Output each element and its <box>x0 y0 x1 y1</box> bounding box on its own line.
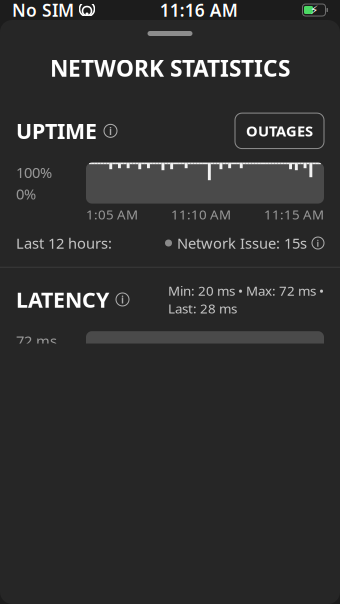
staticText: 11:15 AM <box>264 206 324 223</box>
staticText: OUTAGES <box>246 121 313 141</box>
staticText: NETWORK STATISTICS <box>50 53 290 83</box>
staticText: Network Issue: 15s <box>177 233 307 253</box>
staticText: i <box>316 237 319 249</box>
staticText: ⚡︎ <box>310 3 318 17</box>
button[interactable]: About LATENCY <box>116 293 129 306</box>
staticText: 72 ms <box>16 331 57 351</box>
staticText: No SIM <box>12 0 74 21</box>
staticText: i <box>109 124 112 138</box>
staticText: 1:05 AM <box>86 206 138 223</box>
staticText: 11:10 AM <box>171 206 231 223</box>
staticText: LATENCY <box>16 285 109 314</box>
button[interactable]: OUTAGES <box>235 113 324 149</box>
button[interactable]: About UPTIME <box>104 124 117 137</box>
staticText: i <box>121 292 124 307</box>
staticText: 11:16 AM <box>160 0 238 21</box>
staticText: UPTIME <box>16 117 97 145</box>
staticText: Last 12 hours: <box>16 233 112 253</box>
staticText: 0% <box>16 184 36 204</box>
staticText: 100% <box>16 163 52 182</box>
staticText: Min: 20 ms • Max: 72 ms • Last: 28 ms <box>168 282 324 317</box>
button[interactable]: Network Issue: 15s <box>165 233 324 253</box>
